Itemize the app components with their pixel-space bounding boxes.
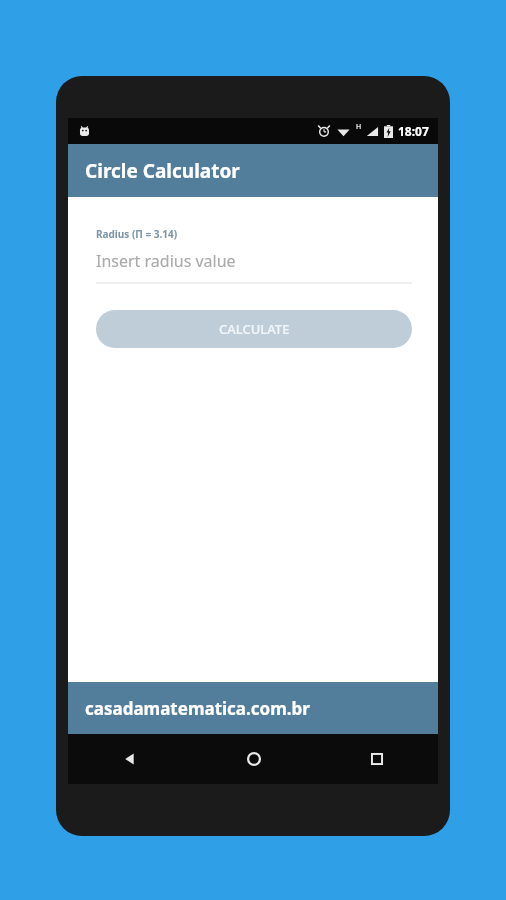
button[interactable]: Circle Calculator <box>68 144 438 197</box>
button[interactable]: CALCULATE <box>96 310 412 348</box>
button[interactable]: Home <box>192 734 315 784</box>
staticText: Circle Calculator <box>85 158 240 184</box>
button[interactable]: Back <box>68 734 192 784</box>
staticText: CALCULATE <box>219 320 290 338</box>
staticText: 18:07 <box>398 123 429 139</box>
button[interactable]: casadamatematica.com.br <box>68 682 438 734</box>
button[interactable]: Recent apps <box>315 734 438 784</box>
staticText: casadamatematica.com.br <box>85 697 310 720</box>
button[interactable]: Insert radius value <box>96 250 412 284</box>
staticText: H <box>356 122 362 132</box>
staticText: Insert radius value <box>96 250 236 272</box>
staticText: Radius (Π = 3.14) <box>96 227 178 241</box>
